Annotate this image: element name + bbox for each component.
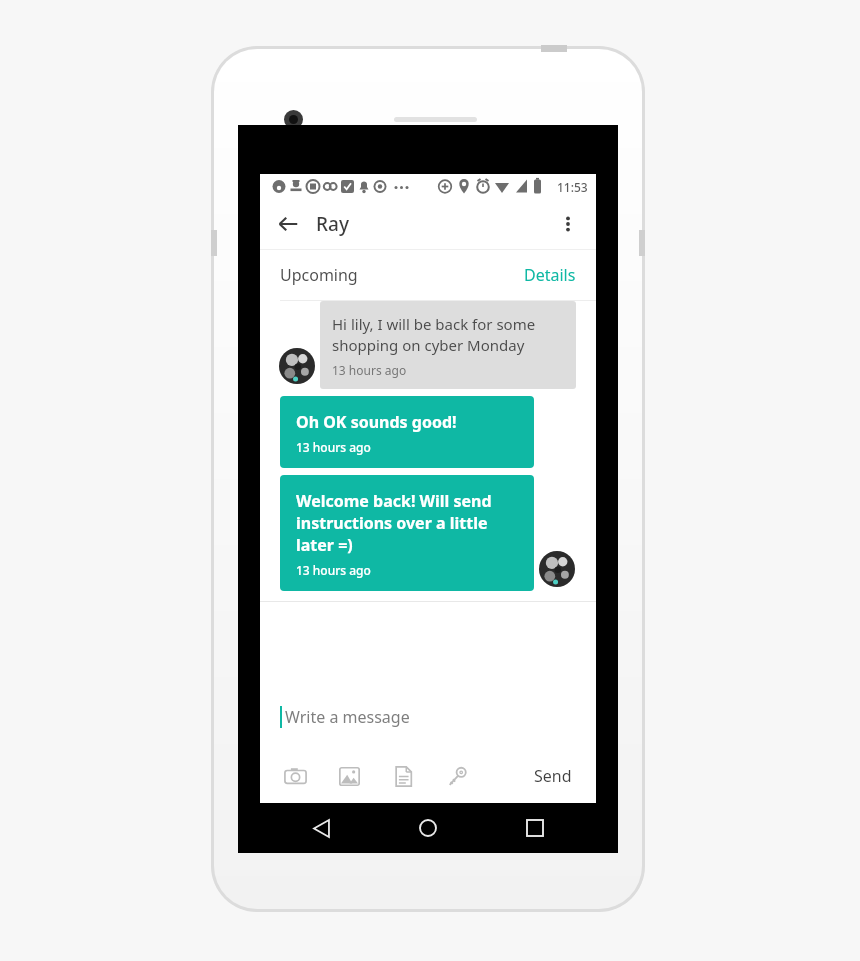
staticText: Oh OK sounds good! xyxy=(296,411,457,433)
staticText: 13 hours ago xyxy=(332,362,407,378)
staticText: Send xyxy=(534,765,572,787)
button[interactable]: Attach image xyxy=(332,759,366,793)
button[interactable]: Back xyxy=(268,204,308,244)
button[interactable]: Take photo xyxy=(278,759,312,793)
staticText: 13 hours ago xyxy=(296,562,371,578)
button[interactable]: Hi lily, I will be back for some shoppin… xyxy=(320,301,576,389)
button[interactable]: Send xyxy=(528,761,578,791)
button[interactable]: Recents xyxy=(512,805,558,851)
staticText: Details xyxy=(524,264,576,286)
button[interactable]: Attach key xyxy=(440,759,474,793)
button[interactable]: Write a message xyxy=(285,706,410,728)
staticText: Ray xyxy=(316,211,349,237)
button[interactable]: Home xyxy=(405,805,451,851)
staticText: Hi lily, I will be back for some shoppin… xyxy=(332,314,564,356)
button[interactable]: Oh OK sounds good! xyxy=(280,396,534,468)
button[interactable]: Back xyxy=(299,805,345,851)
staticText: 11:53 xyxy=(557,179,588,195)
button[interactable]: Welcome back! Will send instructions ove… xyxy=(280,475,534,591)
staticText: Upcoming xyxy=(280,264,358,286)
button[interactable]: More options xyxy=(548,204,588,244)
button[interactable]: Attach document xyxy=(386,759,420,793)
staticText: 13 hours ago xyxy=(296,439,371,455)
button[interactable]: Details xyxy=(524,264,576,286)
staticText: Welcome back! Will send instructions ove… xyxy=(296,490,522,556)
